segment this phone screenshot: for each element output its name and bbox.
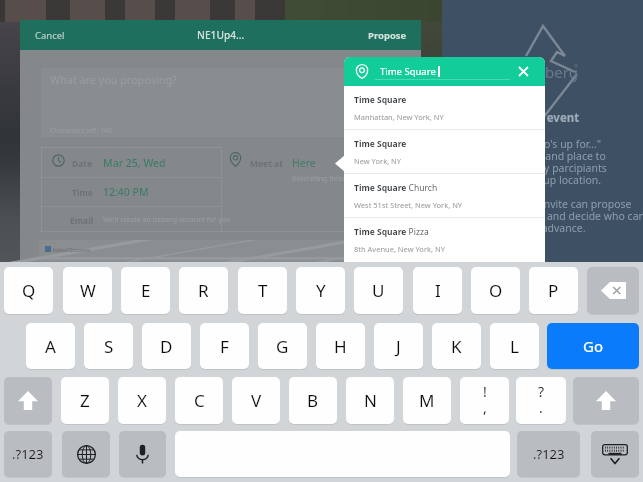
button[interactable]: C [175, 377, 223, 424]
button[interactable]: J [374, 323, 423, 369]
staticText: ® [574, 63, 579, 70]
staticText: Time [72, 187, 93, 199]
staticText: Time Square Church [354, 182, 438, 194]
button[interactable]: A [26, 323, 75, 369]
staticText: J [396, 335, 401, 358]
button[interactable]: Time Square Pizza [344, 218, 545, 261]
button[interactable]: K [432, 323, 481, 369]
staticText: L [510, 335, 519, 358]
button[interactable]: O [471, 267, 520, 314]
staticText: What are you proposing? [50, 72, 177, 87]
staticText: Cancel [35, 29, 65, 42]
staticText: D [160, 335, 173, 358]
staticText: Anyone you invite can propose another ti… [480, 197, 643, 235]
button[interactable]: R [179, 267, 228, 314]
staticText: C [194, 389, 205, 412]
button[interactable]: U [354, 267, 403, 314]
staticText: S [104, 335, 114, 358]
button[interactable]: .?123 [517, 431, 580, 477]
staticText: Time Square [354, 138, 407, 150]
staticText: ! [483, 382, 487, 401]
button[interactable]: Shift [4, 377, 52, 424]
staticText: F [220, 335, 229, 358]
button[interactable]: T [238, 267, 287, 314]
button[interactable]: I [413, 267, 462, 314]
staticText: E [141, 279, 151, 302]
button[interactable]: D [142, 323, 191, 369]
button[interactable]: ! [460, 377, 509, 424]
staticText: Go [583, 336, 603, 356]
button[interactable]: Q [4, 267, 53, 314]
staticText: Ireland Discounts [53, 247, 91, 253]
staticText: Manhattan, New York, NY [354, 112, 444, 122]
button[interactable]: Time Square [344, 86, 545, 129]
button[interactable]: Propose [358, 29, 421, 42]
staticText: New York, NY [354, 156, 402, 166]
staticText: Propose an event [480, 110, 580, 126]
staticText: Characters left: 140 [50, 126, 112, 135]
staticText: .?123 [12, 445, 44, 463]
staticText: Time Square Pizza [354, 226, 429, 238]
button[interactable]: X [118, 377, 166, 424]
staticText: N [364, 389, 377, 412]
staticText: P [548, 279, 559, 302]
button[interactable]: M [403, 377, 451, 424]
staticText: Time Square [380, 65, 436, 78]
button[interactable]: Time Square Church [344, 174, 545, 217]
staticText: G [276, 335, 289, 358]
button[interactable]: E [121, 267, 170, 314]
staticText: ? [538, 382, 545, 401]
button[interactable]: V [232, 377, 280, 424]
staticText: 12:40 PM [103, 185, 149, 199]
button[interactable]: Y [296, 267, 345, 314]
button[interactable]: ? [516, 377, 566, 424]
staticText: V [251, 389, 262, 412]
button[interactable]: L [490, 323, 539, 369]
staticText: NE1Up4... [197, 28, 245, 42]
staticText: , [483, 398, 487, 417]
button[interactable]: W [63, 267, 112, 314]
staticText: A [45, 335, 56, 358]
button[interactable]: Backspace [587, 267, 639, 314]
staticText: O [489, 279, 503, 302]
button[interactable]: Cancel [20, 29, 75, 42]
button[interactable]: Hide keyboard [591, 431, 639, 477]
staticText: . [539, 398, 543, 417]
staticText: (Hostelling Intern [292, 174, 350, 184]
staticText: H [334, 335, 347, 358]
button[interactable]: B [289, 377, 337, 424]
staticText: 8th Avenue, New York, NY [354, 244, 445, 254]
staticText: We'll create an iceberg account for you [103, 215, 231, 225]
staticText: T [258, 279, 268, 302]
button[interactable]: H [316, 323, 365, 369]
staticText: berg [545, 62, 578, 82]
staticText: West 51st Street, New York, NY [354, 200, 463, 210]
staticText: Meet at [250, 158, 283, 170]
button[interactable]: P [529, 267, 578, 314]
staticText: Time Square [354, 94, 407, 106]
staticText: I [435, 279, 441, 302]
staticText: Propose [368, 29, 407, 42]
staticText: B [307, 389, 319, 412]
button[interactable]: Dictation [119, 431, 166, 477]
staticText: U [372, 279, 385, 302]
staticText: Email [70, 215, 94, 227]
button[interactable]: S [84, 323, 133, 369]
staticText: Q [22, 279, 36, 302]
staticText: .?123 [533, 445, 565, 463]
button[interactable]: Z [61, 377, 109, 424]
staticText: Propose "Who's up for..." Select a date … [480, 137, 607, 187]
button[interactable]: G [258, 323, 307, 369]
button[interactable]: F [200, 323, 249, 369]
button[interactable]: N [346, 377, 394, 424]
staticText: Date [72, 158, 93, 170]
button[interactable]: Go [547, 323, 639, 369]
staticText: R [198, 279, 209, 302]
button[interactable]: Time Square [344, 130, 545, 173]
button[interactable]: .?123 [4, 431, 52, 477]
staticText: Here [292, 156, 316, 170]
button[interactable]: Shift [573, 377, 639, 424]
button[interactable]: Next keyboard [62, 431, 110, 477]
button[interactable]: Clear search [516, 64, 531, 79]
